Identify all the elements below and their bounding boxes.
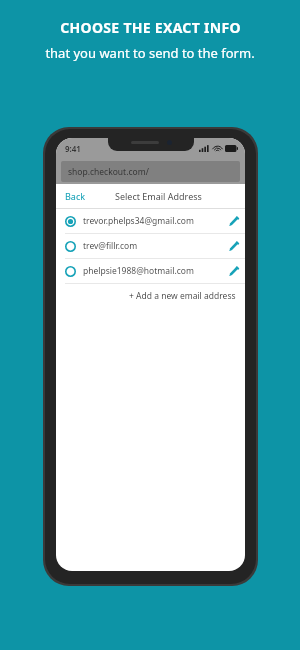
button[interactable]: + Add a new email address — [56, 284, 245, 308]
staticText: Select Email Address — [115, 190, 202, 202]
staticText: shop.checkout.com/ — [68, 166, 149, 178]
button[interactable]: Edit trevor.phelps34@gmail.com — [223, 209, 245, 233]
button[interactable]: Back — [56, 184, 109, 208]
staticText: that you want to send to the form. — [45, 44, 255, 62]
button[interactable]: trev@fillr.com — [56, 234, 245, 258]
button[interactable]: Edit phelpsie1988@hotmail.com — [223, 259, 245, 283]
button[interactable]: shop.checkout.com/ — [61, 161, 240, 182]
staticText: 9:41 — [65, 143, 81, 154]
button[interactable]: Edit trev@fillr.com — [223, 234, 245, 258]
staticText: CHOOSE THE EXACT INFO — [60, 18, 241, 37]
staticText: trevor.phelps34@gmail.com — [83, 215, 194, 227]
staticText: + Add a new email address — [129, 290, 236, 302]
staticText: phelpsie1988@hotmail.com — [83, 265, 194, 277]
staticText: trev@fillr.com — [83, 240, 138, 252]
button[interactable]: trevor.phelps34@gmail.com — [56, 209, 245, 233]
button[interactable]: phelpsie1988@hotmail.com — [56, 259, 245, 283]
staticText: Back — [65, 190, 86, 202]
